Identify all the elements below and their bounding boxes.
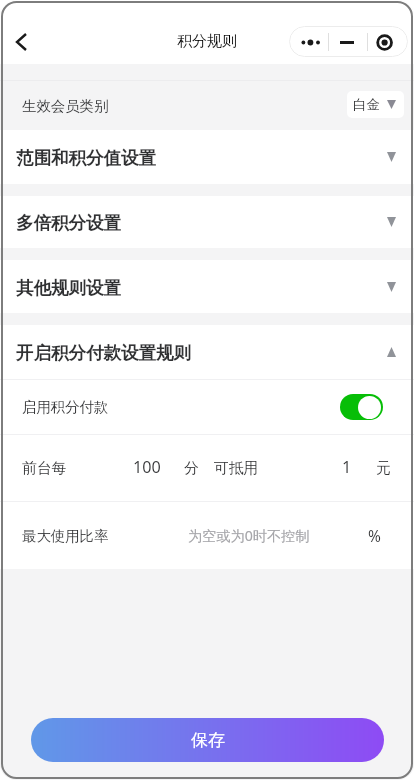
staticText: 为空或为0时不控制	[188, 526, 310, 545]
staticText: 100	[133, 456, 161, 478]
button[interactable]: 白金	[347, 91, 404, 118]
staticText: %	[368, 525, 381, 546]
staticText: 启用积分付款	[22, 398, 109, 416]
button[interactable]: 范围和积分值设置	[0, 130, 414, 184]
staticText: 生效会员类别	[22, 97, 109, 115]
button[interactable]: 生效会员类别	[0, 81, 414, 130]
button[interactable]: 前台每	[0, 435, 414, 501]
button[interactable]: Back	[6, 20, 38, 52]
staticText: 开启积分付款设置规则	[16, 342, 191, 364]
staticText: 保存	[191, 730, 225, 751]
staticText: 前台每	[22, 459, 67, 478]
staticText: 其他规则设置	[16, 277, 121, 299]
staticText: 积分规则	[177, 32, 237, 51]
button[interactable]: 开启积分付款设置规则	[0, 325, 414, 379]
button[interactable]: 保存	[31, 718, 384, 762]
staticText: 1	[342, 456, 352, 478]
button[interactable]: 最大使用比率	[0, 502, 414, 569]
staticText: 多倍积分设置	[16, 212, 121, 234]
staticText: 范围和积分值设置	[16, 147, 156, 169]
button[interactable]: Enable points payment	[340, 394, 383, 420]
staticText: 可抵用	[214, 459, 259, 478]
button[interactable]: 多倍积分设置	[0, 196, 414, 248]
staticText: 最大使用比率	[22, 527, 109, 545]
staticText: 白金	[353, 96, 380, 113]
button[interactable]: More options	[289, 26, 328, 57]
button[interactable]: 其他规则设置	[0, 260, 414, 313]
button[interactable]: Close	[368, 26, 408, 57]
button[interactable]: Minimize	[329, 26, 367, 57]
staticText: 元	[376, 459, 391, 478]
staticText: 分	[184, 459, 199, 478]
